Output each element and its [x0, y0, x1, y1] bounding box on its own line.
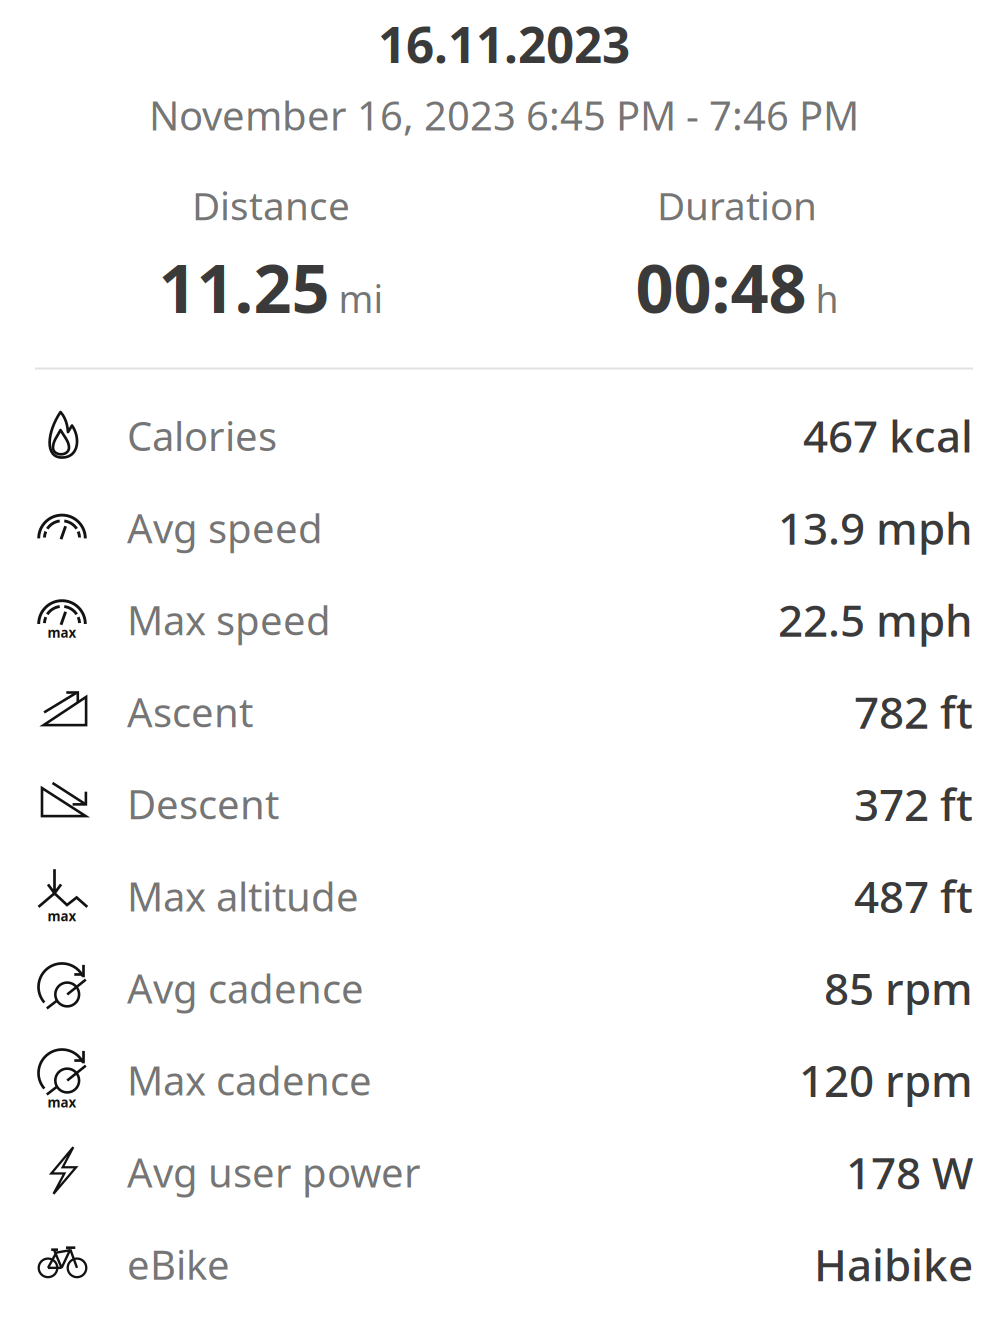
button[interactable]: eBike: [0, 1218, 1008, 1310]
staticText: eBike: [127, 1238, 230, 1291]
button[interactable]: max: [0, 1034, 1008, 1126]
button[interactable]: Ascent: [0, 666, 1008, 758]
staticText: 178 W: [846, 1143, 973, 1201]
button[interactable]: max: [0, 850, 1008, 942]
staticText: Max cadence: [127, 1053, 372, 1107]
staticText: Ascent: [127, 685, 253, 738]
staticText: 467 kcal: [803, 406, 973, 465]
staticText: 372 ft: [854, 775, 973, 833]
staticText: 120 rpm: [799, 1051, 973, 1109]
button[interactable]: Descent: [0, 758, 1008, 850]
staticText: Avg cadence: [127, 961, 364, 1014]
staticText: 22.5 mph: [778, 590, 973, 649]
staticText: 16.11.2023: [378, 11, 630, 76]
staticText: Descent: [127, 777, 279, 830]
staticText: max: [47, 907, 76, 925]
staticText: 11.25: [158, 243, 329, 331]
staticText: 85 rpm: [824, 959, 973, 1017]
staticText: Max altitude: [127, 869, 359, 922]
staticText: November 16, 2023 6:45 PM - 7:46 PM: [149, 88, 859, 142]
staticText: Max speed: [127, 593, 331, 646]
button[interactable]: max: [0, 574, 1008, 666]
staticText: h: [815, 274, 838, 323]
staticText: max: [47, 624, 76, 641]
staticText: Avg user power: [127, 1145, 421, 1199]
staticText: 00:48: [635, 243, 806, 331]
staticText: Duration: [657, 180, 817, 231]
button[interactable]: Calories: [0, 389, 1008, 482]
staticText: 487 ft: [854, 867, 973, 925]
button[interactable]: Avg speed: [0, 482, 1008, 574]
staticText: 782 ft: [854, 682, 973, 741]
staticText: Avg speed: [127, 501, 323, 554]
staticText: Calories: [127, 409, 277, 462]
button[interactable]: Avg user power: [0, 1126, 1008, 1218]
button[interactable]: Avg cadence: [0, 942, 1008, 1034]
staticText: Distance: [192, 180, 350, 231]
staticText: 13.9 mph: [778, 498, 973, 557]
staticText: Haibike: [814, 1235, 973, 1293]
staticText: mi: [338, 274, 383, 323]
staticText: max: [47, 1093, 76, 1111]
